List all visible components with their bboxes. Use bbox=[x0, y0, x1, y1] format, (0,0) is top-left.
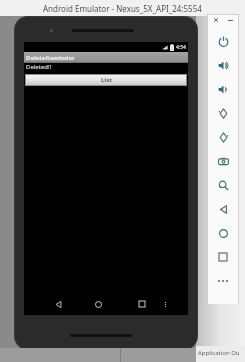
button[interactable]: Volume down bbox=[208, 77, 238, 101]
button[interactable]: Power bbox=[208, 29, 238, 53]
button[interactable]: Back bbox=[50, 296, 66, 312]
button[interactable]: Home bbox=[208, 221, 238, 245]
button[interactable]: Zoom bbox=[208, 173, 238, 197]
staticText: DeleteReminder bbox=[26, 54, 75, 62]
button[interactable]: Home bbox=[90, 296, 106, 312]
button[interactable]: Rotate left bbox=[208, 101, 238, 125]
button[interactable]: More options bbox=[158, 297, 172, 311]
button[interactable]: Rotate right bbox=[208, 125, 238, 149]
staticText: Android Emulator - Nexus_5X_API_24:5554 bbox=[43, 3, 202, 14]
button[interactable]: Take screenshot bbox=[208, 149, 238, 173]
staticText: Application Ou bbox=[198, 349, 240, 357]
button[interactable]: Recent apps bbox=[134, 296, 150, 312]
staticText: 4:54 bbox=[176, 44, 186, 51]
button[interactable]: List bbox=[25, 74, 187, 86]
button[interactable]: Close bbox=[211, 15, 221, 25]
button[interactable]: Overview bbox=[208, 245, 238, 269]
staticText: Deleted!! bbox=[26, 63, 52, 71]
button[interactable]: More bbox=[208, 269, 238, 293]
staticText: List bbox=[101, 76, 112, 84]
button[interactable]: Back bbox=[208, 197, 238, 221]
button[interactable]: Minimize bbox=[225, 15, 235, 25]
button[interactable]: Volume up bbox=[208, 53, 238, 77]
